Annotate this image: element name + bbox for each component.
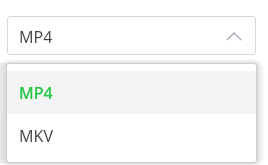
- staticText: MP4: [19, 82, 53, 104]
- staticText: MKV: [19, 125, 54, 147]
- button[interactable]: MP4: [7, 71, 256, 114]
- button[interactable]: MKV: [7, 114, 256, 157]
- button[interactable]: MP4: [7, 16, 256, 55]
- button[interactable]: Collapse dropdown: [221, 23, 247, 49]
- staticText: MP4: [19, 26, 53, 48]
